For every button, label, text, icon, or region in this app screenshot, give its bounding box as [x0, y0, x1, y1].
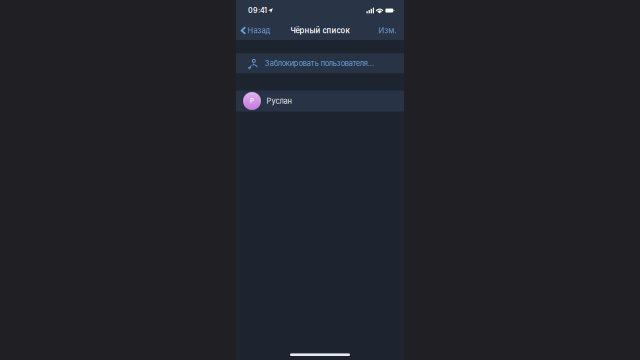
staticText: Чёрный список	[290, 26, 349, 35]
button[interactable]: Р	[236, 90, 404, 111]
staticText: Руслан	[266, 96, 291, 105]
staticText: Заблокировать пользователя…	[265, 59, 374, 68]
staticText: 09:41	[248, 6, 267, 15]
staticText: Назад	[247, 26, 270, 35]
button[interactable]: Назад	[236, 23, 274, 37]
button[interactable]: Изм.	[374, 23, 404, 37]
button[interactable]: Заблокировать пользователя…	[236, 53, 404, 73]
staticText: Изм.	[378, 26, 396, 35]
staticText: Р	[250, 97, 254, 105]
